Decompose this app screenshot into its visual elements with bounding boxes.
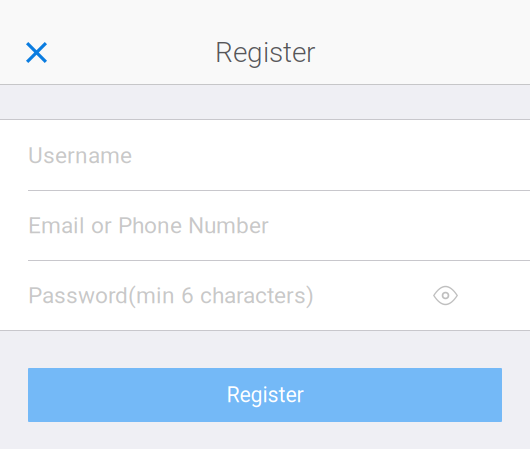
button[interactable]: Email or Phone Number xyxy=(0,191,530,260)
button[interactable]: Password(min 6 characters) xyxy=(0,261,530,330)
button[interactable]: Close xyxy=(13,29,60,76)
button[interactable]: Register xyxy=(28,368,502,422)
staticText: Register xyxy=(226,382,303,407)
staticText: Password(min 6 characters) xyxy=(28,282,314,309)
button[interactable]: Username xyxy=(0,121,530,190)
button[interactable]: Show password xyxy=(411,261,480,330)
staticText: Username xyxy=(28,142,132,169)
staticText: Register xyxy=(215,36,315,69)
staticText: Email or Phone Number xyxy=(28,212,269,239)
